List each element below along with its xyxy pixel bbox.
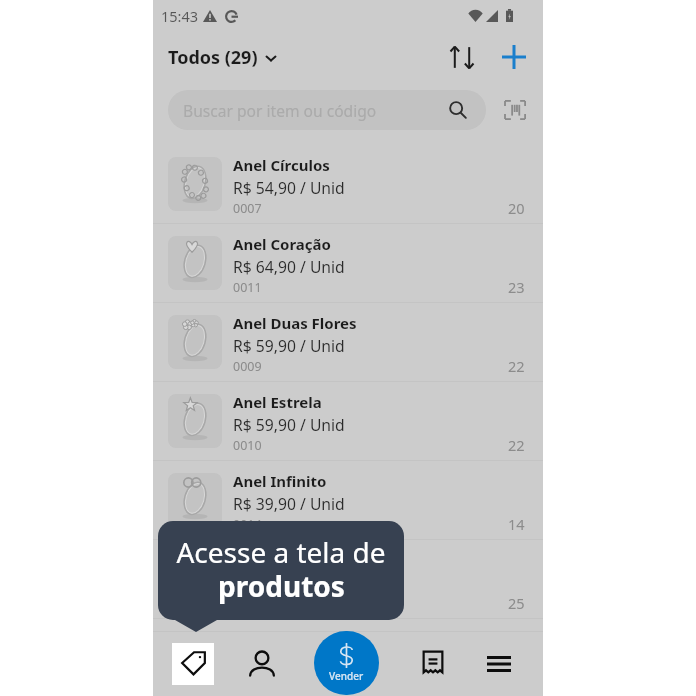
staticText: Anel Duas Flores (233, 313, 357, 333)
button[interactable]: Ordenar (442, 37, 482, 77)
button[interactable]: Anel Duas Flores (153, 303, 543, 382)
button[interactable]: Acesse a tela de (158, 521, 404, 620)
button[interactable]: Anel Estrela (153, 382, 543, 461)
staticText: produtos (218, 567, 345, 605)
staticText: R$ 39,90 / Unid (233, 493, 345, 514)
staticText: Anel Círculos (233, 155, 330, 175)
staticText: 0012 (233, 595, 262, 612)
button[interactable]: Adicionar (494, 37, 534, 77)
button[interactable]: Escanear código (496, 91, 534, 129)
button[interactable]: Anel Círculos (153, 145, 543, 224)
staticText: R$ 59,90 / Unid (233, 335, 345, 356)
staticText: Vender (329, 669, 364, 683)
button[interactable]: Clientes (236, 632, 288, 696)
staticText: 0007 (233, 200, 262, 217)
staticText: 0011 (233, 279, 262, 296)
button[interactable]: Anel Infinito (153, 461, 543, 540)
staticText: R$ 54,90 / Unid (233, 177, 345, 198)
staticText: Buscar por item ou código (183, 100, 377, 121)
staticText: 15:43 (161, 6, 199, 26)
button[interactable]: Pedidos (407, 632, 459, 696)
button[interactable]: Vender (314, 631, 379, 695)
staticText: 20 (508, 198, 525, 218)
staticText: 23 (508, 277, 525, 297)
button[interactable]: Menu (473, 632, 525, 696)
staticText: R$ 59,90 / Unid (233, 414, 345, 435)
button[interactable]: Buscar por item ou código (168, 90, 486, 130)
staticText: Anel Laço (233, 550, 305, 570)
staticText: Anel Infinito (233, 471, 327, 491)
staticText: 0009 (233, 358, 262, 375)
button[interactable]: Todos (29) (168, 45, 278, 70)
button[interactable]: Anel Laço (153, 540, 543, 619)
staticText: Todos (29) (168, 45, 258, 70)
staticText: Anel Coração (233, 234, 331, 254)
staticText: 0010 (233, 437, 262, 454)
staticText: 25 (508, 593, 525, 613)
staticText: R$ 44,90 / Unid (233, 572, 345, 593)
staticText: Anel Estrela (233, 392, 322, 412)
staticText: 22 (508, 435, 525, 455)
staticText: 22 (508, 356, 525, 376)
staticText: 0014 (233, 516, 262, 533)
button[interactable]: Anel Coração (153, 224, 543, 303)
button[interactable]: Produtos (172, 643, 214, 685)
staticText: 14 (508, 514, 525, 534)
staticText: Acesse a tela de (176, 533, 386, 571)
staticText: R$ 64,90 / Unid (233, 256, 345, 277)
